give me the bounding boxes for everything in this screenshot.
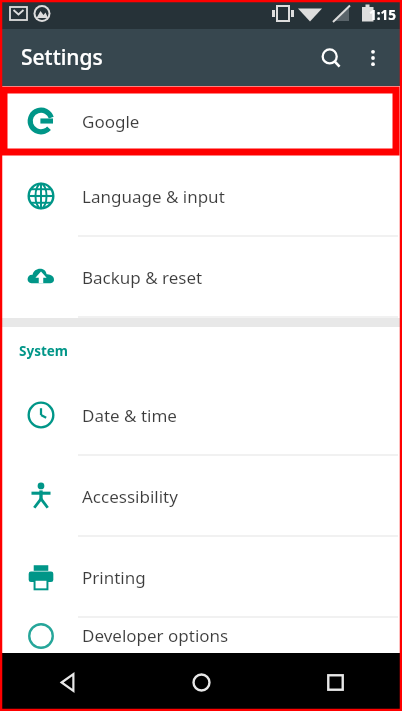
staticText: Date & time <box>82 404 177 427</box>
button[interactable]: Printing <box>0 537 402 617</box>
staticText: Backup & reset <box>82 266 203 289</box>
button[interactable]: Home <box>134 653 268 711</box>
button[interactable]: Accessibility <box>0 456 402 536</box>
button[interactable]: Recent apps <box>268 653 402 711</box>
button[interactable]: More options <box>352 37 394 79</box>
button[interactable]: Back <box>0 653 134 711</box>
button[interactable]: Language & input <box>0 156 402 236</box>
staticText: System <box>19 342 69 360</box>
staticText: Settings <box>21 43 103 72</box>
staticText: Developer options <box>82 624 229 647</box>
button[interactable]: Backup & reset <box>0 237 402 317</box>
staticText: Language & input <box>82 185 225 208</box>
button[interactable]: Date & time <box>0 375 402 455</box>
staticText: Printing <box>82 566 146 589</box>
staticText: Google <box>82 110 140 133</box>
staticText: Accessibility <box>82 485 178 508</box>
button[interactable]: Google <box>0 86 402 156</box>
button[interactable]: Developer options <box>0 618 402 653</box>
button[interactable]: Search <box>308 35 354 81</box>
staticText: 1:15 <box>369 6 396 24</box>
